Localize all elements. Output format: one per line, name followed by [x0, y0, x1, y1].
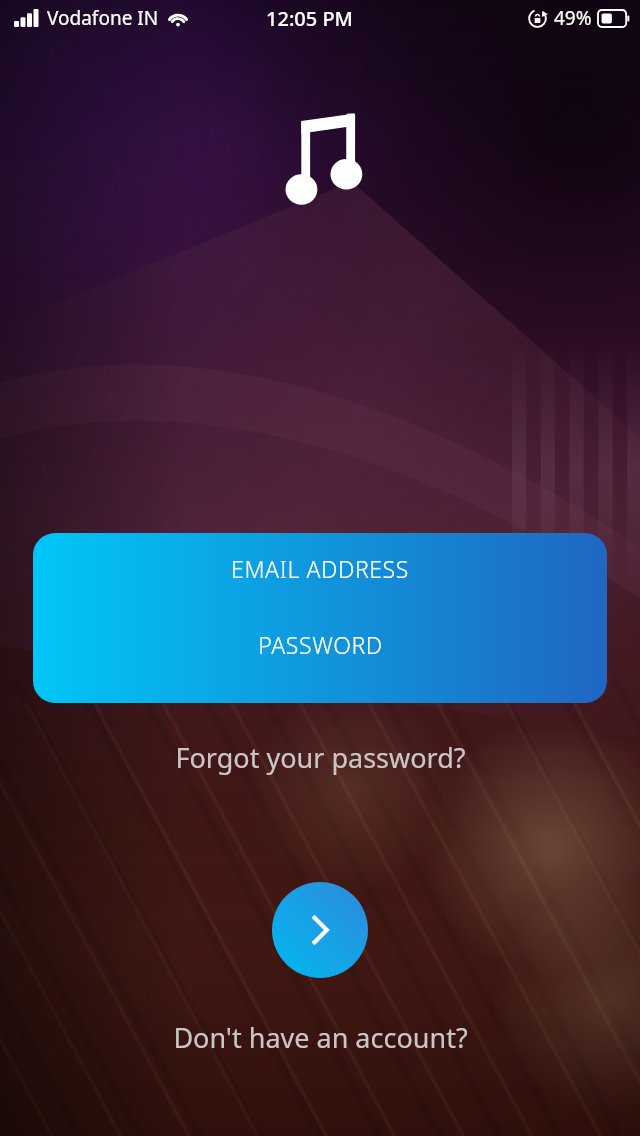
- button[interactable]: Forgot your password?: [159, 733, 482, 782]
- button[interactable]: EMAIL ADDRESS: [33, 533, 607, 618]
- staticText: 49%: [554, 5, 592, 31]
- staticText: 12:05 PM: [266, 5, 353, 32]
- button[interactable]: Sign in: [272, 882, 368, 978]
- staticText: PASSWORD: [258, 629, 383, 660]
- button[interactable]: PASSWORD: [33, 618, 607, 703]
- staticText: Vodafone IN: [47, 5, 159, 31]
- staticText: Don't have an account?: [173, 1019, 468, 1056]
- staticText: Forgot your password?: [175, 739, 466, 776]
- button[interactable]: Don't have an account?: [157, 1013, 484, 1062]
- staticText: EMAIL ADDRESS: [231, 553, 409, 584]
